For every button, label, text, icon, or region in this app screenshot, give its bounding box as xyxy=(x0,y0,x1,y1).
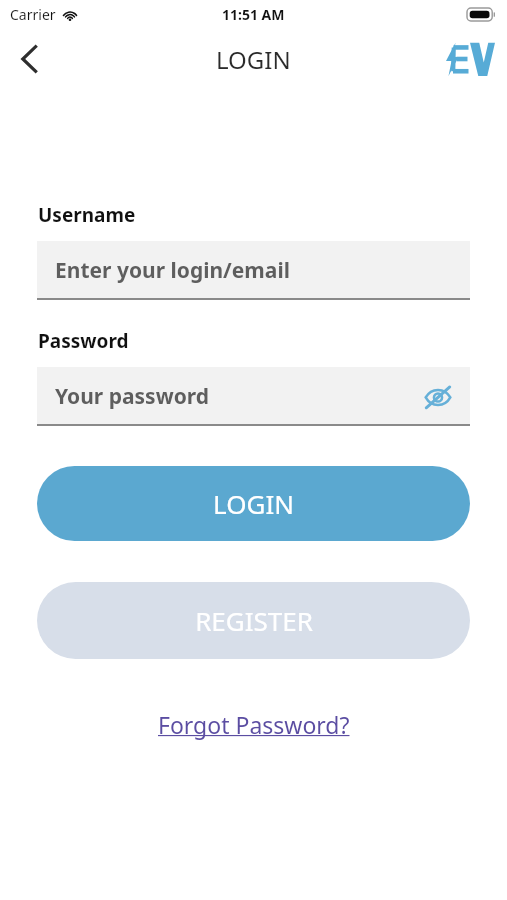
button[interactable]: LOGIN xyxy=(37,466,470,541)
staticText: Username xyxy=(38,202,136,228)
staticText: REGISTER xyxy=(195,603,313,638)
button[interactable]: Enter your login/email xyxy=(37,241,470,300)
staticText: LOGIN xyxy=(213,486,294,521)
button[interactable]: Back xyxy=(6,35,54,83)
staticText: LOGIN xyxy=(216,43,291,76)
staticText: Password xyxy=(38,328,129,354)
staticText: Carrier xyxy=(10,5,56,24)
button[interactable]: Show password xyxy=(420,379,456,415)
staticText: Enter your login/email xyxy=(55,256,290,285)
staticText: 11:51 AM xyxy=(222,5,285,24)
button[interactable]: REGISTER xyxy=(37,582,470,659)
staticText: Your password xyxy=(55,382,209,411)
button[interactable]: Forgot Password? xyxy=(148,703,360,746)
button[interactable]: Your password xyxy=(37,367,470,426)
button[interactable]: EV logo xyxy=(443,38,497,80)
staticText: Forgot Password? xyxy=(158,709,350,740)
